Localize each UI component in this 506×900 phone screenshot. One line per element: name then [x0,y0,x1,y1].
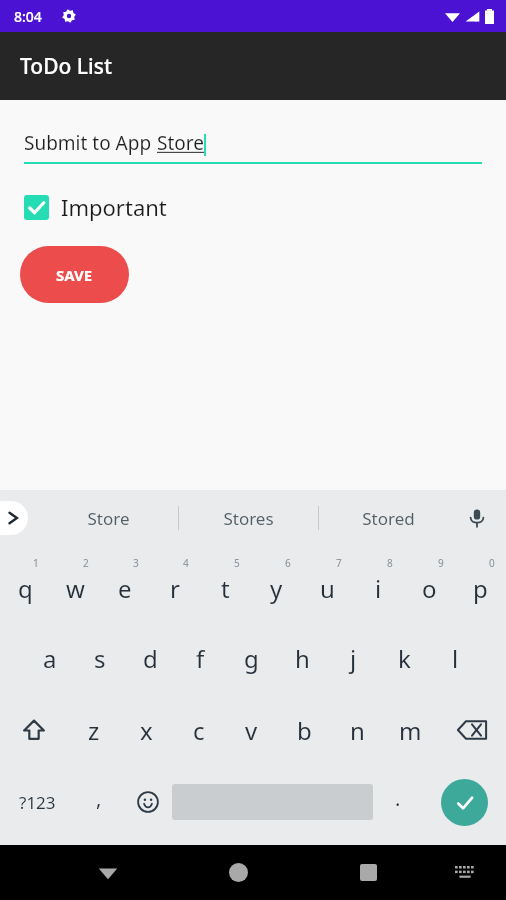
staticText: 0 [489,556,495,570]
button[interactable]: d [125,622,175,694]
staticText: b [297,714,312,747]
button[interactable]: m [384,694,437,766]
staticText: a [43,642,57,675]
staticText: l [452,642,459,675]
staticText: 7 [336,556,342,570]
staticText: ToDo List [20,52,112,81]
button[interactable]: Submit to App [24,130,482,164]
button[interactable]: g [226,622,277,694]
staticText: w [66,572,85,605]
button[interactable]: SAVE [20,246,129,303]
button[interactable]: f [175,622,226,694]
staticText: g [244,642,259,675]
staticText: 3 [133,556,139,570]
button[interactable]: . [373,766,422,838]
button[interactable]: Emoji [123,766,172,838]
button[interactable]: Switch keyboard [431,845,498,900]
button[interactable]: Backspace [437,694,506,766]
button[interactable]: Back [71,845,145,900]
staticText: p [473,572,488,605]
staticText: y [270,572,283,605]
staticText: j [350,642,357,675]
staticText: 5 [234,556,240,570]
button[interactable]: 2 [50,550,100,622]
staticText: d [143,642,158,675]
button[interactable]: c [172,694,225,766]
staticText: Submit to App [24,130,157,156]
button[interactable]: 0 [455,550,506,622]
button[interactable]: Done [441,779,488,826]
staticText: Store [87,507,130,530]
button[interactable]: Store [38,490,178,546]
button[interactable]: Recent apps [331,845,405,900]
button[interactable]: v [225,694,278,766]
staticText: t [221,572,230,605]
staticText: . [395,785,401,812]
button[interactable]: Voice input [460,501,494,535]
staticText: o [422,572,437,605]
button[interactable]: z [68,694,120,766]
button[interactable]: 1 [0,550,50,622]
button[interactable]: s [75,622,125,694]
button[interactable]: 9 [404,550,455,622]
button[interactable]: 4 [150,550,200,622]
button[interactable]: 6 [251,550,302,622]
button[interactable]: k [379,622,430,694]
staticText: ?123 [19,791,56,814]
button[interactable]: Important [24,192,167,222]
button[interactable]: 5 [200,550,251,622]
button[interactable]: ?123 [0,766,74,838]
staticText: 1 [33,556,39,570]
staticText: k [398,642,411,675]
staticText: 6 [285,556,291,570]
staticText: q [18,572,33,605]
staticText: r [170,572,180,605]
button[interactable]: h [277,622,328,694]
button[interactable]: 7 [302,550,353,622]
staticText: m [399,714,422,747]
staticText: i [375,572,382,605]
staticText: x [140,714,153,747]
button[interactable]: 8 [353,550,404,622]
staticText: Stores [223,507,274,530]
staticText: h [295,642,310,675]
staticText: c [193,714,205,747]
staticText: v [245,714,258,747]
staticText: 4 [183,556,189,570]
staticText: f [196,642,205,675]
staticText: , [96,785,102,812]
staticText: Stored [362,507,415,530]
staticText: 8:04 [14,7,42,26]
button[interactable]: Shift [0,694,68,766]
button[interactable]: , [74,766,123,838]
button[interactable]: a [25,622,75,694]
staticText: e [118,572,132,605]
button[interactable]: Stores [179,490,318,546]
staticText: 8 [387,556,393,570]
staticText: z [88,714,100,747]
button[interactable]: Home [201,845,275,900]
button[interactable]: Expand suggestions [0,501,28,535]
button[interactable]: 3 [100,550,150,622]
staticText: SAVE [56,265,93,285]
button[interactable]: n [331,694,384,766]
staticText: Store [157,130,204,156]
staticText: 2 [83,556,89,570]
button[interactable]: Stored [319,490,458,546]
button[interactable]: l [430,622,481,694]
staticText: n [350,714,365,747]
staticText: Important [61,192,167,222]
button[interactable]: b [278,694,331,766]
staticText: u [320,572,335,605]
staticText: s [94,642,106,675]
button[interactable]: j [328,622,379,694]
button[interactable]: x [120,694,172,766]
staticText: 9 [438,556,444,570]
